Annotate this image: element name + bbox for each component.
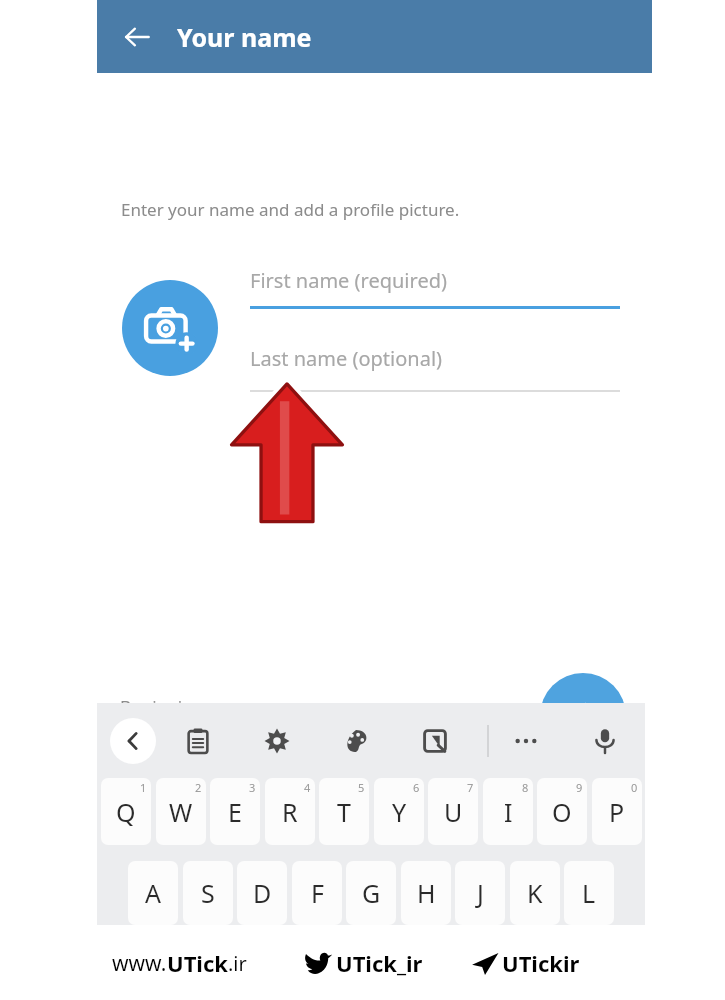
button[interactable]: D xyxy=(237,861,287,925)
staticText: S xyxy=(201,876,215,910)
staticText: T xyxy=(337,795,351,829)
staticText: R xyxy=(282,795,298,829)
staticText: F xyxy=(311,876,324,910)
staticText: 0 xyxy=(631,780,638,795)
staticText: E xyxy=(228,795,242,829)
staticText: UTickir xyxy=(502,948,580,978)
button[interactable]: F xyxy=(292,861,342,925)
button[interactable]: K xyxy=(510,861,560,925)
button[interactable]: Keyboard tool xyxy=(175,718,221,764)
button[interactable]: I xyxy=(483,778,533,845)
button[interactable]: T xyxy=(319,778,369,845)
button[interactable]: Keyboard tool xyxy=(412,718,458,764)
staticText: 5 xyxy=(358,780,365,795)
staticText: J xyxy=(477,876,484,910)
button[interactable]: Terms of Service. xyxy=(256,724,392,747)
button[interactable]: S xyxy=(183,861,233,925)
button[interactable]: A xyxy=(128,861,178,925)
staticText: Y xyxy=(392,795,407,829)
staticText: you agree to the xyxy=(120,724,256,747)
staticText: 1 xyxy=(140,780,147,795)
staticText: D xyxy=(253,876,272,910)
button[interactable]: Next xyxy=(540,673,626,759)
staticText: 2 xyxy=(195,780,202,795)
staticText: G xyxy=(362,876,381,910)
staticText: K xyxy=(527,876,543,910)
staticText: A xyxy=(145,876,161,910)
button[interactable]: W xyxy=(156,778,206,845)
button[interactable]: Keyboard tool xyxy=(333,718,379,764)
staticText: Enter your name and add a profile pictur… xyxy=(121,198,460,221)
staticText: 8 xyxy=(522,780,529,795)
button[interactable]: G xyxy=(346,861,396,925)
staticText: www. xyxy=(112,949,167,978)
staticText: First name (required) xyxy=(250,267,447,294)
button[interactable]: Keyboard tool xyxy=(582,718,628,764)
button[interactable]: Back xyxy=(110,718,156,764)
button[interactable]: E xyxy=(210,778,260,845)
button[interactable]: First name (required) xyxy=(250,263,620,311)
staticText: H xyxy=(417,876,436,910)
staticText: U xyxy=(444,795,463,829)
button[interactable]: O xyxy=(537,778,587,845)
button[interactable]: R xyxy=(265,778,315,845)
staticText: UTick xyxy=(167,948,228,978)
button[interactable]: H xyxy=(401,861,451,925)
staticText: Your name xyxy=(177,20,312,54)
staticText: W xyxy=(169,795,193,829)
staticText: Last name (optional) xyxy=(250,345,443,372)
button[interactable]: Last name (optional) xyxy=(250,341,620,389)
staticText: UTick_ir xyxy=(336,948,423,978)
button[interactable]: Add profile picture xyxy=(122,280,218,376)
button[interactable]: Y xyxy=(374,778,424,845)
staticText: P xyxy=(609,795,625,829)
staticText: 3 xyxy=(249,780,256,795)
button[interactable]: Keyboard tool xyxy=(503,718,549,764)
staticText: 9 xyxy=(576,780,583,795)
button[interactable]: Back xyxy=(111,11,163,63)
button[interactable]: L xyxy=(564,861,614,925)
button[interactable]: J xyxy=(455,861,505,925)
staticText: By signing up, xyxy=(120,695,233,718)
button[interactable]: Q xyxy=(101,778,151,845)
button[interactable]: U xyxy=(428,778,478,845)
button[interactable]: Keyboard tool xyxy=(254,718,300,764)
staticText: O xyxy=(552,795,572,829)
staticText: L xyxy=(582,876,596,910)
staticText: 6 xyxy=(413,780,420,795)
button[interactable]: P xyxy=(592,778,642,845)
staticText: 7 xyxy=(467,780,474,795)
staticText: .ir xyxy=(228,950,247,977)
staticText: Q xyxy=(116,795,136,829)
staticText: 4 xyxy=(304,780,311,795)
staticText: I xyxy=(504,795,513,829)
